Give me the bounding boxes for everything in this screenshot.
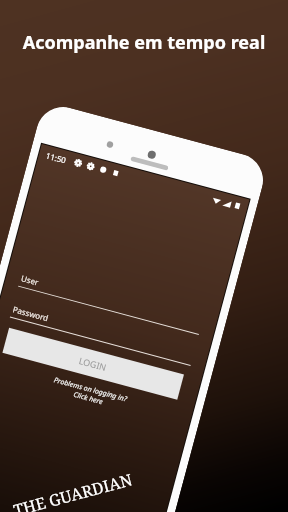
- staticText: THE GUARDIAN: [11, 468, 134, 512]
- staticText: LOGIN: [78, 354, 109, 373]
- staticText: User: [20, 272, 40, 288]
- staticText: 11:50: [45, 150, 68, 166]
- button[interactable]: LOGIN: [2, 328, 184, 400]
- staticText: Acompanhe em tempo real: [0, 30, 288, 55]
- staticText: Password: [12, 303, 50, 323]
- button[interactable]: Problems on logging in? Click here: [0, 362, 179, 426]
